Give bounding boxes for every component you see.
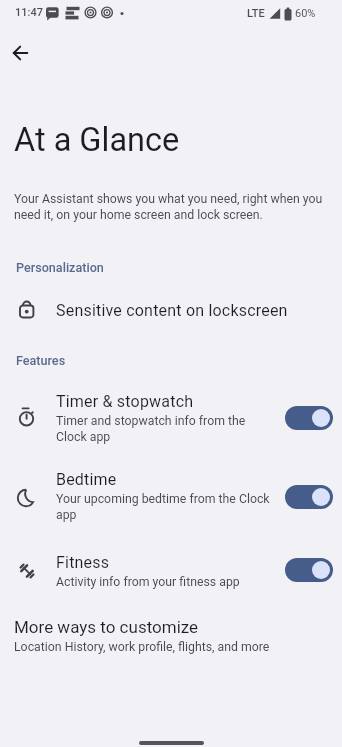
staticText: Activity info from your fitness app — [56, 575, 240, 589]
staticText: Location History, work profile, flights,… — [14, 640, 270, 654]
button[interactable]: Bedtime — [0, 462, 342, 526]
staticText: Bedtime — [56, 470, 117, 489]
button[interactable]: Sensitive content on lockscreen — [0, 288, 342, 332]
staticText: Personalization — [16, 260, 104, 275]
button[interactable]: Timer & stopwatch — [0, 385, 342, 449]
staticText: Fitness — [56, 553, 110, 572]
staticText: LTE — [247, 7, 265, 20]
staticText: Timer & stopwatch — [56, 392, 194, 411]
button[interactable] — [285, 558, 333, 582]
staticText: At a Glance — [14, 121, 180, 159]
button[interactable]: Fitness — [0, 549, 342, 607]
staticText: Sensitive content on lockscreen — [56, 301, 288, 320]
staticText: 11:47 — [15, 6, 43, 19]
staticText: Features — [16, 353, 66, 368]
staticText: Your Assistant shows you what you need, … — [14, 192, 323, 222]
button[interactable] — [6, 39, 34, 67]
staticText: Your upcoming bedtime from the Clock app — [56, 492, 270, 522]
button[interactable] — [285, 485, 333, 509]
staticText: More ways to customize — [14, 617, 199, 637]
button[interactable]: More ways to customize — [0, 607, 342, 665]
staticText: Timer and stopwatch info from the Clock … — [56, 414, 246, 444]
button[interactable] — [285, 406, 333, 430]
staticText: 60% — [295, 7, 316, 20]
